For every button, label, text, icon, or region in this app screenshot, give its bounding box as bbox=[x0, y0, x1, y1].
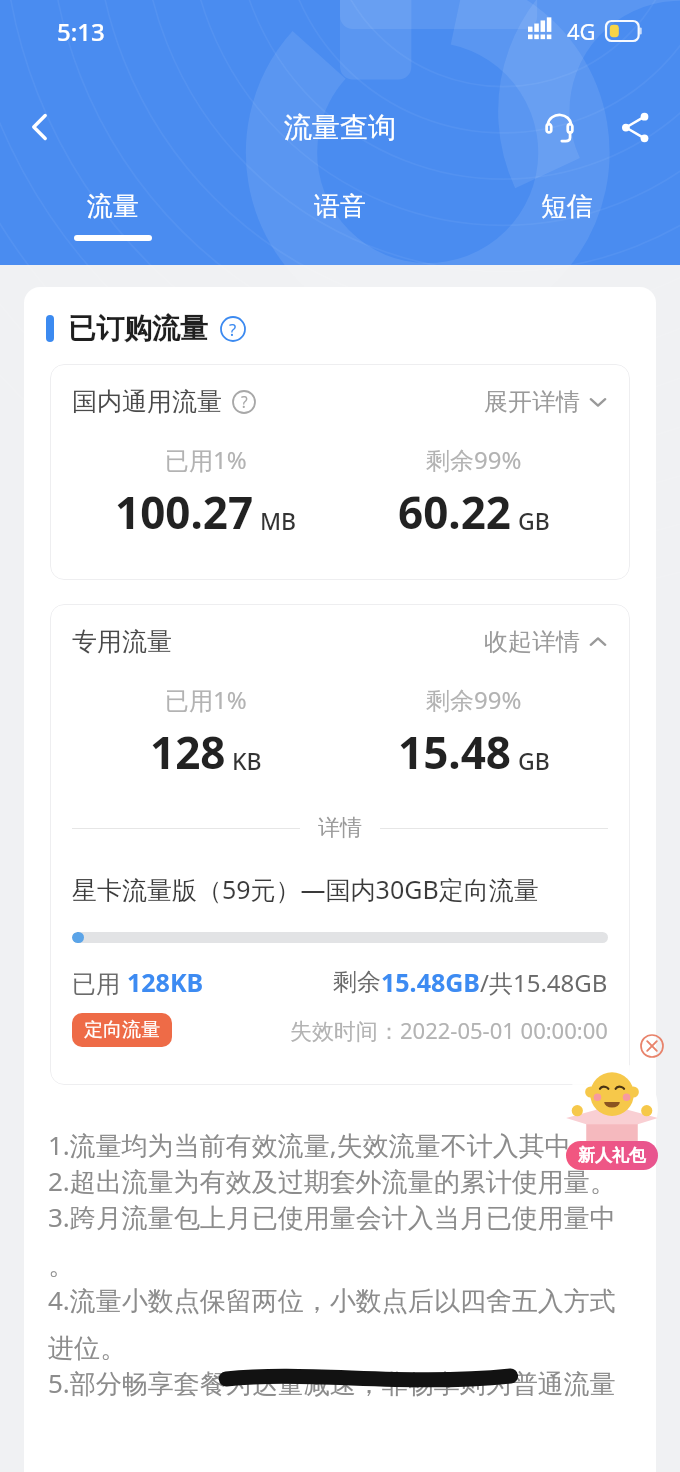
staticText: 3.跨月流量包上月已使用量会计入当月已使用量中 。 bbox=[48, 1199, 616, 1282]
staticText: MB bbox=[260, 505, 297, 536]
staticText: 流量查询 bbox=[284, 110, 396, 145]
button[interactable]: 流量 bbox=[0, 188, 226, 243]
staticText: /共15.48GB bbox=[480, 966, 608, 999]
staticText: 1.流量均为当前有效流量,失效流量不计入其中。 bbox=[48, 1127, 597, 1163]
staticText: 语音 bbox=[314, 190, 366, 223]
staticText: 失效时间：2022-05-01 00:00:00 bbox=[290, 1015, 608, 1045]
staticText: 流量 bbox=[87, 190, 139, 223]
button[interactable]: Back bbox=[12, 99, 68, 155]
button[interactable]: Share bbox=[608, 100, 662, 154]
staticText: 15.48GB bbox=[381, 965, 480, 999]
button[interactable]: Help bbox=[220, 316, 246, 342]
staticText: 5:13 bbox=[57, 15, 105, 48]
button[interactable]: Close promotion bbox=[640, 1034, 664, 1058]
staticText: 已用1% bbox=[165, 443, 247, 476]
staticText: 剩余99% bbox=[426, 443, 522, 476]
staticText: 100.27 bbox=[115, 482, 254, 542]
staticText: 新人礼包 bbox=[578, 1145, 646, 1166]
staticText: 星卡流量版（59元）—国内30GB定向流量 bbox=[72, 872, 539, 906]
staticText: 国内通用流量 bbox=[72, 386, 222, 417]
staticText: 展开详情 bbox=[484, 387, 580, 417]
staticText: 15.48 bbox=[398, 722, 512, 782]
staticText: ? bbox=[241, 392, 248, 413]
button[interactable]: Help bbox=[232, 390, 256, 414]
staticText: 收起详情 bbox=[484, 627, 580, 657]
staticText: ? bbox=[229, 318, 237, 341]
staticText: 2.超出流量为有效及过期套外流量的累计使用量。 bbox=[48, 1163, 616, 1199]
staticText: 128 bbox=[150, 722, 226, 782]
staticText: 短信 bbox=[541, 190, 593, 223]
staticText: 128KB bbox=[127, 965, 204, 999]
staticText: 4G bbox=[567, 16, 596, 46]
button[interactable]: Customer service bbox=[532, 100, 586, 154]
button[interactable]: 定向流量 bbox=[72, 1013, 172, 1047]
staticText: 详情 bbox=[318, 814, 362, 842]
button[interactable]: 短信 bbox=[453, 188, 680, 243]
staticText: 已用 bbox=[72, 966, 127, 999]
button[interactable]: 语音 bbox=[226, 188, 453, 243]
button[interactable]: 国内通用流量 bbox=[72, 386, 608, 417]
staticText: 剩余 bbox=[333, 967, 381, 997]
staticText: 已用1% bbox=[165, 683, 247, 716]
staticText: 已订购流量 bbox=[68, 311, 208, 346]
staticText: 专用流量 bbox=[72, 626, 172, 657]
staticText: KB bbox=[232, 745, 262, 776]
staticText: 定向流量 bbox=[84, 1018, 160, 1042]
staticText: 剩余99% bbox=[426, 683, 522, 716]
staticText: 5.部分畅享套餐为达量减速，非畅享则为普通流量 bbox=[48, 1365, 616, 1401]
staticText: GB bbox=[518, 505, 550, 536]
staticText: GB bbox=[518, 745, 550, 776]
button[interactable]: New user gift pack bbox=[556, 1066, 668, 1170]
button[interactable]: 专用流量 bbox=[72, 626, 608, 657]
staticText: 60.22 bbox=[398, 482, 512, 542]
staticText: 4.流量小数点保留两位，小数点后以四舍五入方式 进位。 bbox=[48, 1282, 616, 1365]
